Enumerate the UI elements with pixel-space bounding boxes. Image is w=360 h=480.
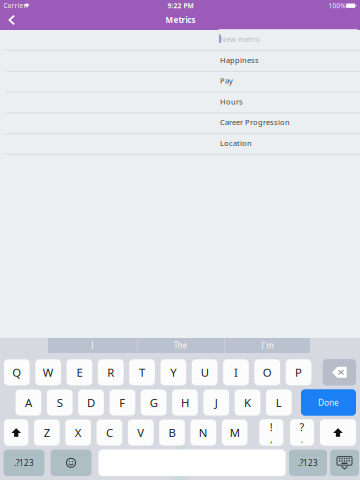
button[interactable]: The: [137, 338, 224, 353]
staticText: I: [91, 340, 94, 351]
button[interactable]: Back: [2, 10, 22, 30]
staticText: I: [234, 365, 238, 380]
staticText: A: [25, 395, 32, 410]
button[interactable]: T: [129, 359, 155, 385]
button[interactable]: L: [266, 389, 292, 415]
button[interactable]: W: [35, 359, 61, 385]
staticText: P: [295, 365, 302, 380]
button[interactable]: Hide keyboard: [330, 450, 359, 476]
staticText: Pay: [220, 76, 233, 86]
staticText: F: [119, 395, 125, 410]
staticText: .?123: [298, 457, 318, 468]
button[interactable]: I: [223, 359, 249, 385]
button[interactable]: J: [203, 389, 229, 415]
button[interactable]: R: [98, 359, 124, 385]
button[interactable]: I: [48, 338, 137, 353]
staticText: !: [270, 420, 273, 434]
button[interactable]: Q: [4, 359, 30, 385]
staticText: U: [201, 365, 209, 380]
button[interactable]: Happiness: [219, 50, 358, 70]
button[interactable]: I'm: [224, 338, 310, 353]
staticText: 9:22 PM: [167, 1, 193, 10]
staticText: ,: [270, 434, 272, 445]
button[interactable]: E: [67, 359, 92, 385]
button[interactable]: Y: [160, 359, 186, 385]
staticText: C: [106, 425, 113, 440]
button[interactable]: ?: [290, 419, 314, 446]
button[interactable]: C: [97, 419, 122, 445]
staticText: G: [150, 395, 158, 410]
staticText: S: [57, 395, 63, 410]
staticText: H: [181, 395, 189, 410]
button[interactable]: H: [172, 389, 198, 415]
button[interactable]: Hours: [219, 91, 358, 111]
button[interactable]: .?123: [3, 450, 44, 476]
button[interactable]: S: [47, 389, 73, 415]
button[interactable]: A: [16, 389, 41, 415]
button[interactable]: Career Progression: [219, 112, 358, 132]
staticText: Done: [318, 397, 339, 408]
staticText: O: [263, 365, 272, 380]
staticText: D: [87, 395, 95, 410]
button[interactable]: O: [254, 359, 280, 385]
button[interactable]: V: [128, 419, 154, 445]
button[interactable]: Delete: [323, 359, 356, 386]
staticText: Z: [44, 425, 50, 440]
button[interactable]: Pay: [219, 71, 358, 91]
staticText: E: [76, 365, 82, 380]
button[interactable]: N: [190, 419, 216, 445]
staticText: .: [301, 434, 303, 445]
staticText: 100%: [328, 1, 346, 10]
button[interactable]: D: [78, 389, 104, 415]
staticText: New metric: [220, 34, 261, 44]
button[interactable]: !: [259, 419, 283, 446]
button[interactable]: Emoji: [50, 450, 91, 476]
button[interactable]: F: [109, 389, 135, 415]
staticText: I'm: [261, 340, 273, 351]
staticText: R: [107, 365, 114, 380]
button[interactable]: B: [159, 419, 185, 445]
staticText: M: [230, 425, 240, 440]
staticText: W: [43, 365, 54, 380]
staticText: Hours: [220, 96, 243, 107]
button[interactable]: U: [192, 359, 217, 385]
staticText: K: [244, 395, 251, 410]
staticText: Carrier: [3, 1, 26, 10]
staticText: Metrics: [165, 14, 195, 25]
staticText: .?123: [14, 457, 34, 468]
button[interactable]: Shift: [320, 419, 356, 446]
button[interactable]: Location: [219, 133, 358, 153]
staticText: X: [75, 425, 82, 440]
staticText: Location: [220, 138, 252, 148]
button[interactable]: Z: [34, 419, 60, 445]
staticText: B: [169, 425, 176, 440]
button[interactable]: Shift: [4, 419, 28, 446]
staticText: Happiness: [220, 55, 259, 65]
staticText: Career Progression: [220, 117, 290, 127]
button[interactable]: K: [235, 389, 260, 415]
staticText: Q: [12, 365, 21, 380]
staticText: The: [174, 340, 188, 351]
staticText: Y: [170, 365, 176, 380]
button[interactable]: X: [65, 419, 91, 445]
button[interactable]: P: [286, 359, 311, 385]
staticText: T: [139, 365, 145, 380]
button[interactable]: G: [141, 389, 166, 415]
staticText: V: [137, 425, 144, 440]
button[interactable]: M: [222, 419, 247, 445]
button[interactable]: Done: [301, 389, 356, 416]
staticText: ?: [299, 420, 304, 434]
staticText: N: [199, 425, 208, 440]
button[interactable]: .?123: [289, 450, 327, 476]
staticText: J: [215, 395, 218, 410]
button[interactable]: New metric: [219, 29, 358, 49]
staticText: L: [276, 395, 282, 410]
